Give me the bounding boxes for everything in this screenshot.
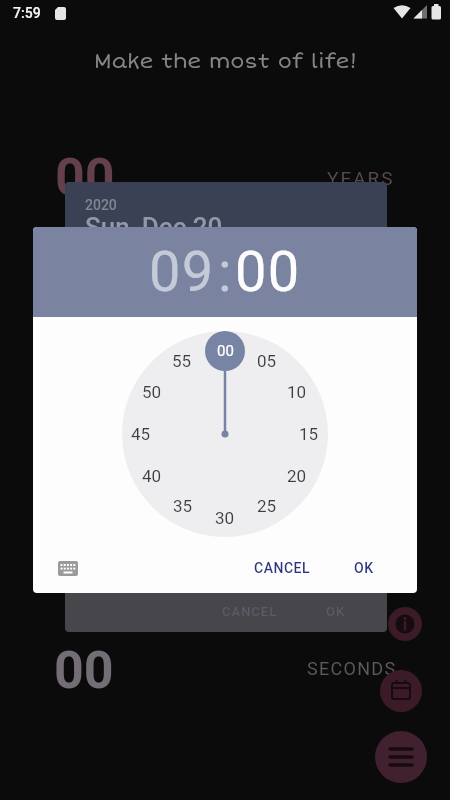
- button[interactable]: [58, 561, 78, 577]
- staticText: 35: [173, 496, 193, 516]
- staticText: :: [218, 239, 232, 305]
- staticText: 50: [142, 382, 162, 402]
- staticText: 00: [54, 640, 114, 701]
- button[interactable]: [380, 670, 422, 712]
- staticText: 30: [215, 508, 235, 528]
- button[interactable]: [375, 731, 427, 783]
- staticText: Make the most of life!: [94, 48, 357, 74]
- staticText: OK: [326, 604, 346, 619]
- staticText: Sun, Dec 20: [85, 212, 223, 242]
- staticText: CANCEL: [222, 604, 278, 619]
- button[interactable]: [388, 607, 422, 641]
- staticText: 45: [131, 424, 151, 444]
- button[interactable]: CANCEL: [234, 549, 330, 587]
- staticText: YEARS: [327, 167, 395, 189]
- staticText: 00: [217, 342, 234, 360]
- staticText: 10: [287, 382, 307, 402]
- staticText: 00: [235, 239, 301, 305]
- staticText: SECONDS: [307, 658, 397, 679]
- staticText: CANCEL: [254, 560, 311, 576]
- button[interactable]: OK: [336, 549, 392, 587]
- staticText: OK: [354, 560, 374, 576]
- staticText: 20: [287, 466, 307, 486]
- staticText: 2020: [85, 197, 117, 213]
- staticText: 7:59: [13, 5, 41, 21]
- staticText: 40: [142, 466, 162, 486]
- staticText: 09: [149, 239, 215, 305]
- staticText: 00: [55, 147, 115, 208]
- staticText: 25: [257, 496, 277, 516]
- staticText: 05: [257, 351, 277, 371]
- staticText: 55: [172, 351, 192, 371]
- staticText: 15: [299, 424, 319, 444]
